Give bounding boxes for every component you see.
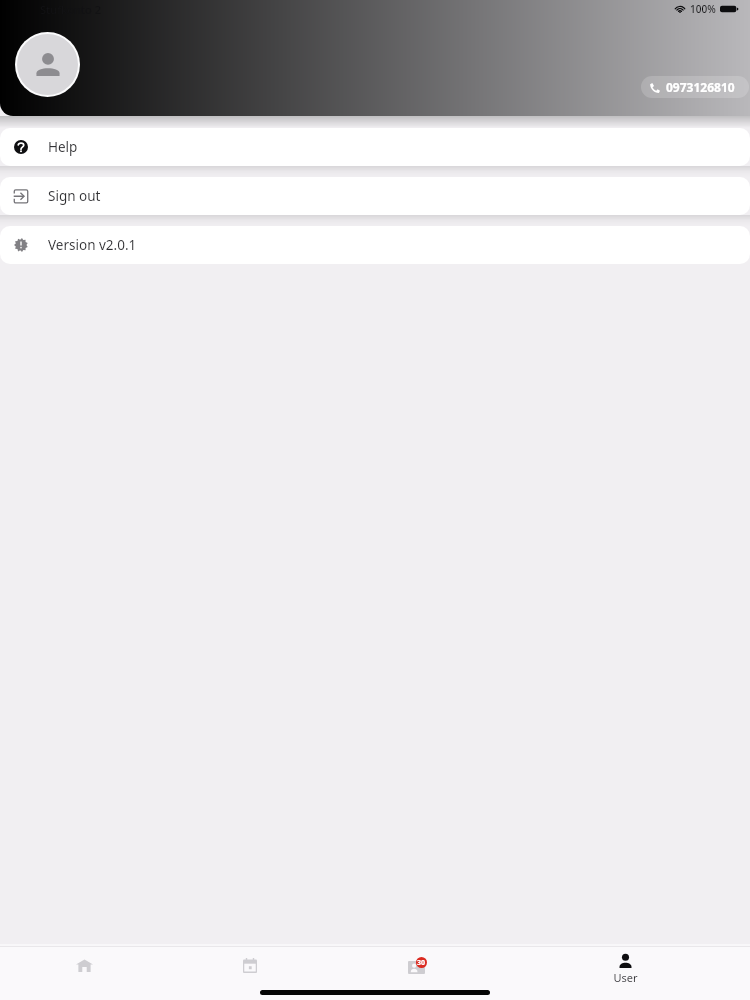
button[interactable]: Home <box>64 945 104 985</box>
button[interactable]: 0973126810 <box>641 76 749 98</box>
staticText: Version v2.0.1 <box>48 236 137 254</box>
staticText: 30 <box>417 958 426 968</box>
staticText: 0973126810 <box>666 79 735 95</box>
button[interactable]: Calendar <box>230 945 270 985</box>
staticText: Stufkonto 2 <box>40 2 101 17</box>
button[interactable]: Version v2.0.1 <box>0 226 750 264</box>
button[interactable]: Help <box>0 128 750 166</box>
staticText: Sign out <box>48 187 101 205</box>
button[interactable]: Sign out <box>0 177 750 215</box>
staticText: 100% <box>690 2 716 16</box>
button[interactable]: Profile <box>15 32 80 97</box>
button[interactable]: User <box>600 954 650 985</box>
staticText: User <box>613 970 638 985</box>
button[interactable]: Contacts <box>397 945 437 985</box>
staticText: Help <box>48 138 78 156</box>
